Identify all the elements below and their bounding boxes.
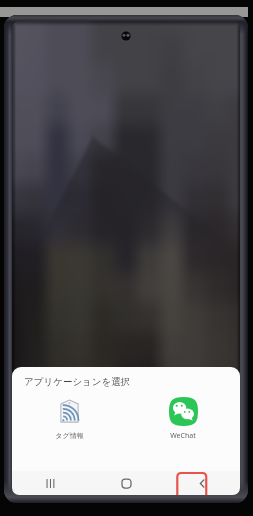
staticText: アプリケーションを選択 (24, 376, 131, 388)
button[interactable]: Home (88, 471, 164, 495)
staticText: WeChat (170, 431, 196, 441)
staticText: タグ情報 (55, 431, 84, 440)
button[interactable]: タグ情報 (12, 395, 126, 440)
button[interactable]: Recent apps (12, 471, 88, 495)
button[interactable]: WeChat (126, 395, 240, 441)
button[interactable]: Back (164, 471, 240, 495)
